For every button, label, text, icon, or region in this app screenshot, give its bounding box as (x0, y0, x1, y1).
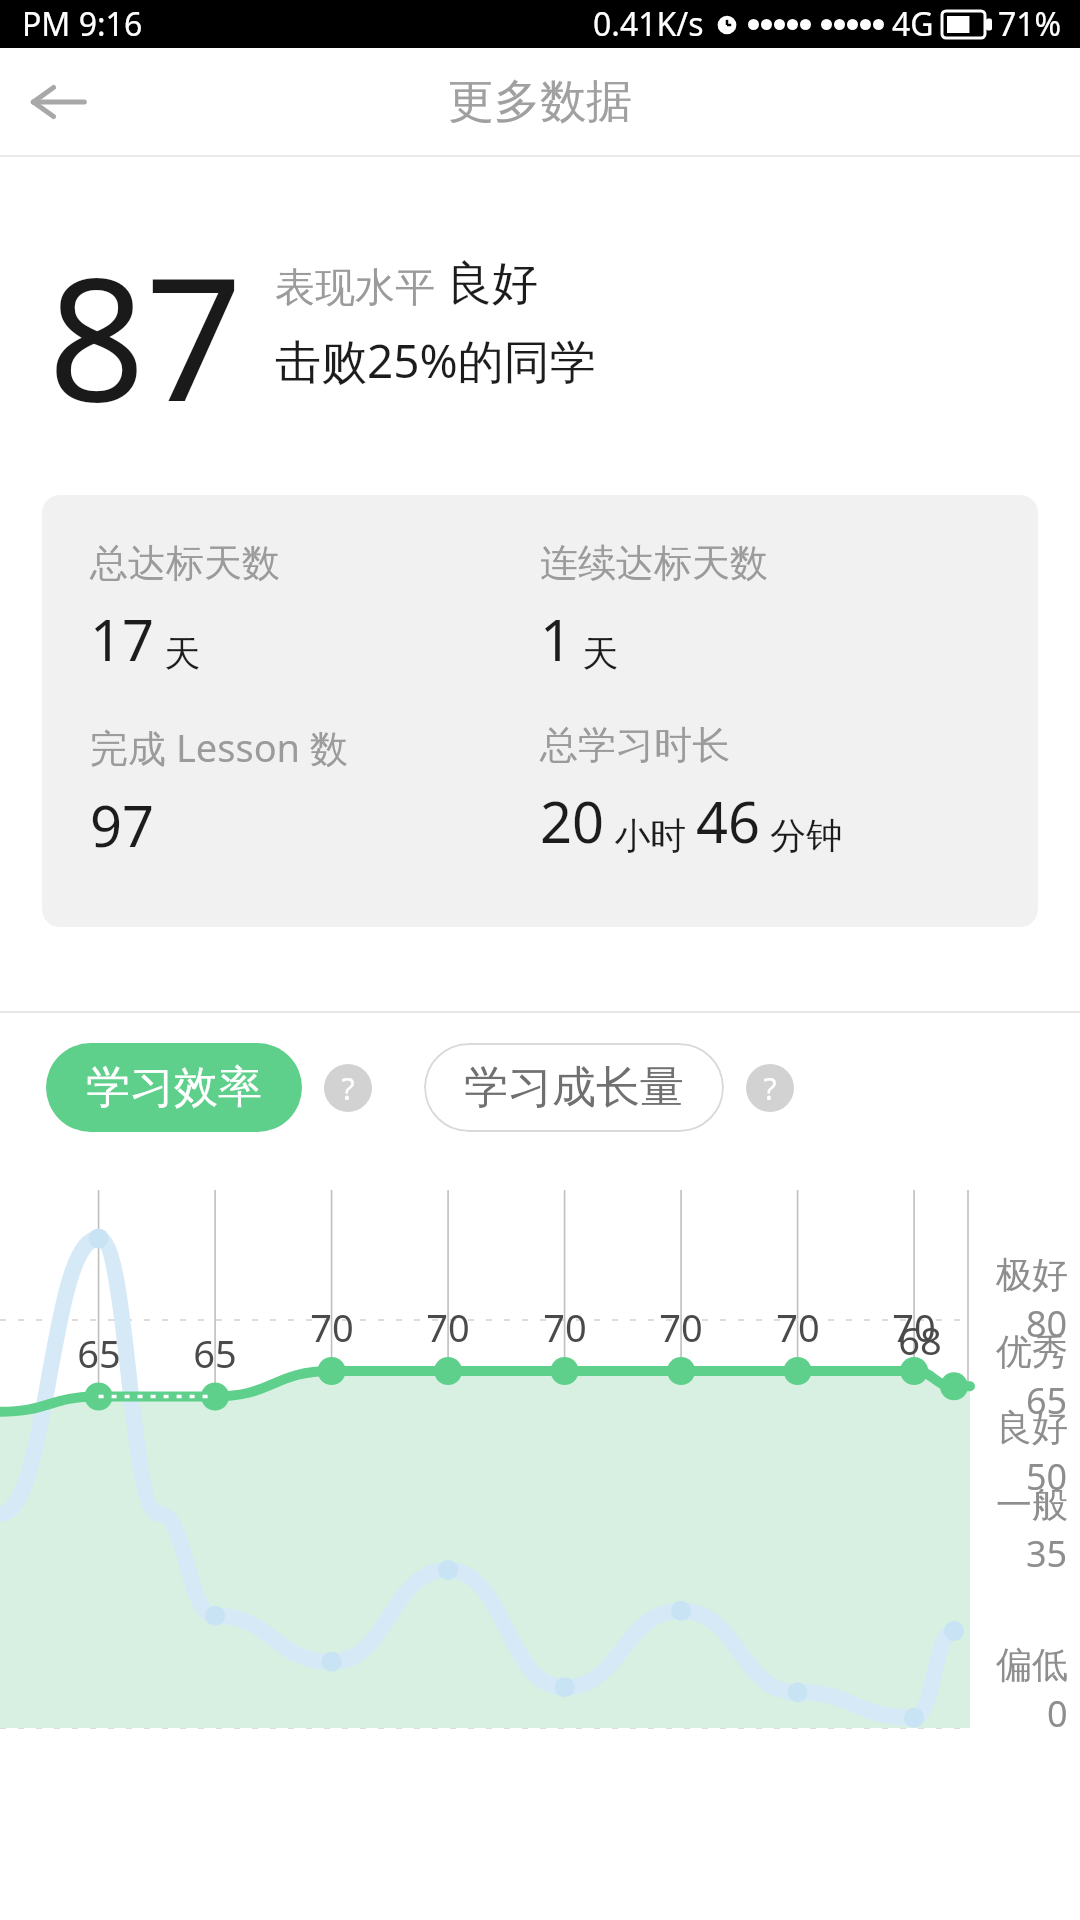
button[interactable]: 学习效率 (46, 1043, 302, 1132)
staticText: 20 (540, 783, 605, 859)
button[interactable]: 总达标天数 (42, 495, 1038, 927)
staticText: 0 (1047, 1689, 1068, 1738)
button[interactable]: 学习成长量 (424, 1043, 724, 1132)
button[interactable]: Back (8, 52, 108, 152)
staticText: 70 (659, 1301, 703, 1353)
staticText: 总学习时长 (540, 721, 730, 769)
staticText: 学习成长量 (464, 1060, 684, 1115)
staticText: 一般 (996, 1482, 1068, 1527)
button[interactable]: Help (324, 1064, 372, 1112)
staticText: 天 (573, 628, 619, 677)
staticText: 68 (898, 1314, 942, 1366)
staticText: 80 (1026, 1299, 1068, 1348)
staticText: 70 (426, 1301, 470, 1353)
staticText: 71% (998, 2, 1062, 46)
staticText: 总达标天数 (90, 539, 280, 587)
staticText: 学习效率 (86, 1060, 262, 1115)
staticText: 完成 Lesson 数 (90, 721, 348, 773)
staticText: 70 (543, 1301, 587, 1353)
staticText: 优秀 (996, 1329, 1068, 1374)
staticText: 1 (540, 601, 573, 677)
staticText: 65 (1026, 1376, 1068, 1425)
staticText: 分钟 (761, 810, 843, 859)
staticText: 良好 (446, 255, 538, 313)
staticText: 70 (892, 1301, 936, 1353)
staticText: 97 (90, 787, 155, 863)
staticText: ? (763, 1068, 777, 1109)
staticText: 良好 (996, 1405, 1068, 1450)
staticText: 35 (1026, 1529, 1068, 1578)
staticText: 击败25%的同学 (275, 329, 596, 392)
staticText: 极好 (996, 1252, 1068, 1297)
button[interactable]: Help (746, 1064, 794, 1112)
staticText: 70 (776, 1301, 820, 1353)
staticText: 连续达标天数 (540, 539, 768, 587)
staticText: PM 9:16 (22, 2, 143, 46)
staticText: 46 (696, 783, 761, 859)
staticText: 50 (1026, 1452, 1068, 1501)
staticText: 小时 (605, 810, 696, 859)
staticText: 65 (193, 1327, 237, 1379)
staticText: 表现水平 (275, 258, 446, 313)
staticText: 更多数据 (448, 73, 632, 131)
staticText: 偏低 (996, 1642, 1068, 1687)
staticText: 65 (77, 1327, 121, 1379)
staticText: 天 (155, 628, 201, 677)
staticText: 87 (48, 219, 243, 451)
staticText: 0.41K/s (593, 2, 704, 46)
staticText: 70 (310, 1301, 354, 1353)
staticText: 17 (90, 601, 155, 677)
staticText: ? (341, 1068, 355, 1109)
staticText: 4G (892, 2, 934, 46)
